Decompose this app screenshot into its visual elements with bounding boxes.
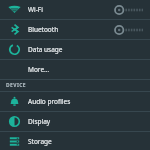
staticText: Wi-Fi — [28, 5, 43, 14]
staticText: DEVICE — [6, 82, 27, 89]
other: Bluetooth — [8, 23, 21, 36]
button[interactable]: Storage — [0, 132, 150, 150]
staticText: Audio profiles — [28, 97, 71, 106]
button[interactable]: More… — [0, 60, 150, 79]
other: Wi-Fi — [8, 3, 21, 16]
other: Data usage — [8, 43, 21, 56]
other: Display — [8, 115, 21, 128]
button[interactable]: Bluetooth — [0, 20, 150, 39]
staticText: Storage — [28, 137, 52, 146]
button[interactable]: Wi-Fi — [0, 0, 150, 19]
button[interactable]: Display — [0, 112, 150, 131]
staticText: Data usage — [28, 45, 63, 54]
staticText: More… — [28, 65, 50, 74]
button[interactable]: Data usage — [0, 40, 150, 59]
button[interactable]: Toggle Wi-Fi — [114, 0, 150, 19]
button[interactable]: Toggle Bluetooth — [114, 20, 150, 39]
staticText: Bluetooth — [28, 25, 59, 34]
other: Audio profiles — [8, 95, 21, 108]
staticText: Display — [28, 117, 51, 126]
button[interactable]: Audio profiles — [0, 92, 150, 111]
other: Storage — [8, 135, 21, 148]
